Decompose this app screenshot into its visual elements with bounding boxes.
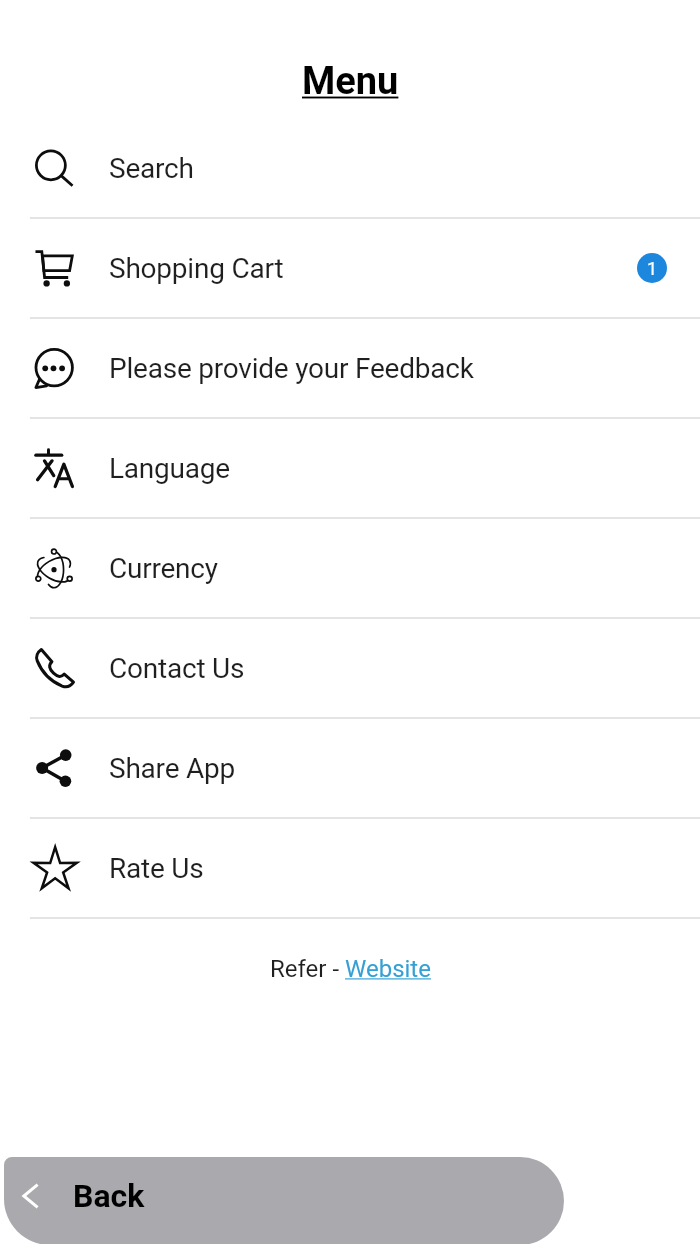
staticText: Share App (109, 752, 236, 785)
other: Language (34, 447, 76, 489)
staticText: Website (345, 955, 431, 983)
staticText: Search (109, 152, 194, 185)
staticText: Contact Us (109, 652, 245, 685)
other: Currency (34, 547, 76, 589)
button[interactable]: Search (0, 119, 700, 219)
button[interactable]: Feedback (0, 319, 700, 419)
button[interactable]: Shopping Cart (0, 219, 700, 319)
other: Feedback (34, 347, 76, 389)
other: Back (16, 1181, 46, 1211)
button[interactable]: Back (4, 1157, 564, 1244)
staticText: Refer - (270, 955, 345, 983)
button[interactable]: Contact Us (0, 619, 700, 719)
staticText: Rate Us (109, 852, 204, 885)
other: Contact Us (34, 647, 76, 689)
button[interactable]: Rate Us (0, 819, 700, 919)
button[interactable]: Currency (0, 519, 700, 619)
button[interactable]: Website (345, 955, 431, 983)
staticText: Please provide your Feedback (109, 352, 474, 385)
other: Search (34, 147, 76, 189)
button[interactable]: Share App (0, 719, 700, 819)
staticText: Currency (109, 552, 218, 585)
other: Share App (34, 747, 76, 789)
button[interactable]: Language (0, 419, 700, 519)
staticText: Back (73, 1177, 145, 1215)
staticText: Menu (302, 59, 399, 104)
staticText: 1 (647, 258, 658, 279)
other: Rate Us (30, 843, 80, 893)
other: Shopping Cart (34, 247, 76, 289)
staticText: Language (109, 452, 230, 485)
staticText: Shopping Cart (109, 252, 284, 285)
